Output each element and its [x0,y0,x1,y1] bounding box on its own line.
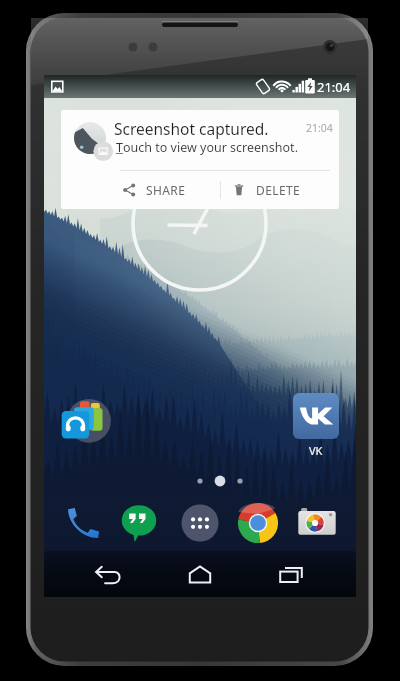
staticText: SHARE [146,182,186,198]
staticText: T [116,139,123,156]
staticText: Screenshot captured. [114,118,269,139]
staticText: 21:04 [306,121,333,135]
button[interactable]: Home [180,560,220,588]
button[interactable]: DELETE [232,174,301,205]
button[interactable]: VK [282,393,350,458]
staticText: 21:04 [317,78,351,96]
staticText: VK [309,443,323,458]
button[interactable]: SHARE [122,174,186,205]
button[interactable]: Hangouts [118,502,160,544]
button[interactable]: Recents [271,560,311,588]
button[interactable]: Screenshot captured. [61,110,339,209]
button[interactable]: Camera [296,502,338,544]
button[interactable]: Phone [63,502,105,544]
staticText: DELETE [256,182,301,198]
button[interactable]: Chrome [237,502,279,544]
button[interactable]: All apps [179,502,221,544]
button[interactable]: Play Music folder [56,392,116,452]
staticText: ouch to view your screenshot. [123,139,298,156]
button[interactable]: Back [89,560,129,588]
